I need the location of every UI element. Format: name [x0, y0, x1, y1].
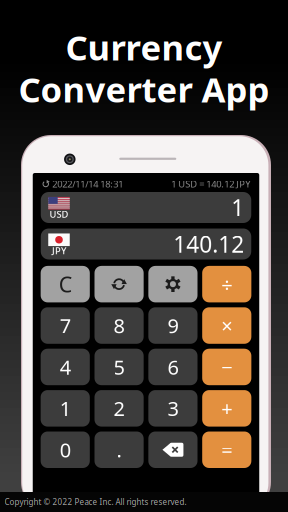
button[interactable]: 6 — [148, 349, 197, 385]
staticText: 2 — [114, 395, 125, 422]
staticText: 6 — [167, 354, 178, 380]
staticText: Copyright © 2022 Peace Inc. All rights r… — [4, 497, 186, 507]
staticText: Converter App — [18, 66, 269, 112]
button[interactable]: 1 — [41, 390, 90, 427]
button[interactable]: USD — [41, 192, 251, 223]
staticText: . — [117, 436, 122, 463]
button[interactable]: − — [202, 349, 251, 385]
button[interactable]: C — [41, 266, 90, 302]
button[interactable]: 7 — [41, 307, 90, 344]
staticText: 3 — [167, 395, 178, 422]
button[interactable]: × — [202, 307, 251, 344]
staticText: 1 USD = 140.12 JPY — [171, 178, 250, 190]
button[interactable]: 0 — [41, 431, 90, 468]
staticText: Currency — [65, 24, 222, 70]
staticText: = — [221, 436, 232, 463]
staticText: JPY — [52, 244, 66, 257]
staticText: USD — [49, 208, 68, 220]
button[interactable]: 3 — [148, 390, 197, 427]
button[interactable]: . — [94, 431, 144, 468]
button[interactable]: ÷ — [202, 266, 251, 302]
staticText: 140.12 — [173, 229, 244, 259]
staticText: 1 — [231, 192, 244, 222]
button[interactable] — [148, 266, 197, 302]
button[interactable]: + — [202, 390, 251, 427]
button[interactable]: 8 — [94, 307, 144, 344]
button[interactable]: 5 — [94, 349, 144, 385]
staticText: C — [59, 270, 72, 298]
staticText: 8 — [114, 312, 125, 339]
button[interactable]: = — [202, 431, 251, 468]
button[interactable]: 2 — [94, 390, 144, 427]
staticText: 2022/11/14 18:31 — [52, 178, 123, 190]
staticText: 7 — [60, 312, 71, 339]
staticText: − — [221, 354, 232, 380]
staticText: 0 — [60, 436, 71, 463]
staticText: × — [221, 312, 232, 339]
button[interactable]: 4 — [41, 349, 90, 385]
staticText: ÷ — [221, 271, 232, 297]
staticText: 4 — [60, 354, 71, 380]
button[interactable]: JPY — [41, 228, 251, 259]
button[interactable] — [94, 266, 144, 302]
staticText: 5 — [114, 354, 125, 380]
button[interactable] — [148, 431, 197, 468]
staticText: + — [221, 395, 232, 422]
staticText: 9 — [167, 312, 178, 339]
button[interactable]: 9 — [148, 307, 197, 344]
staticText: 1 — [60, 395, 71, 422]
